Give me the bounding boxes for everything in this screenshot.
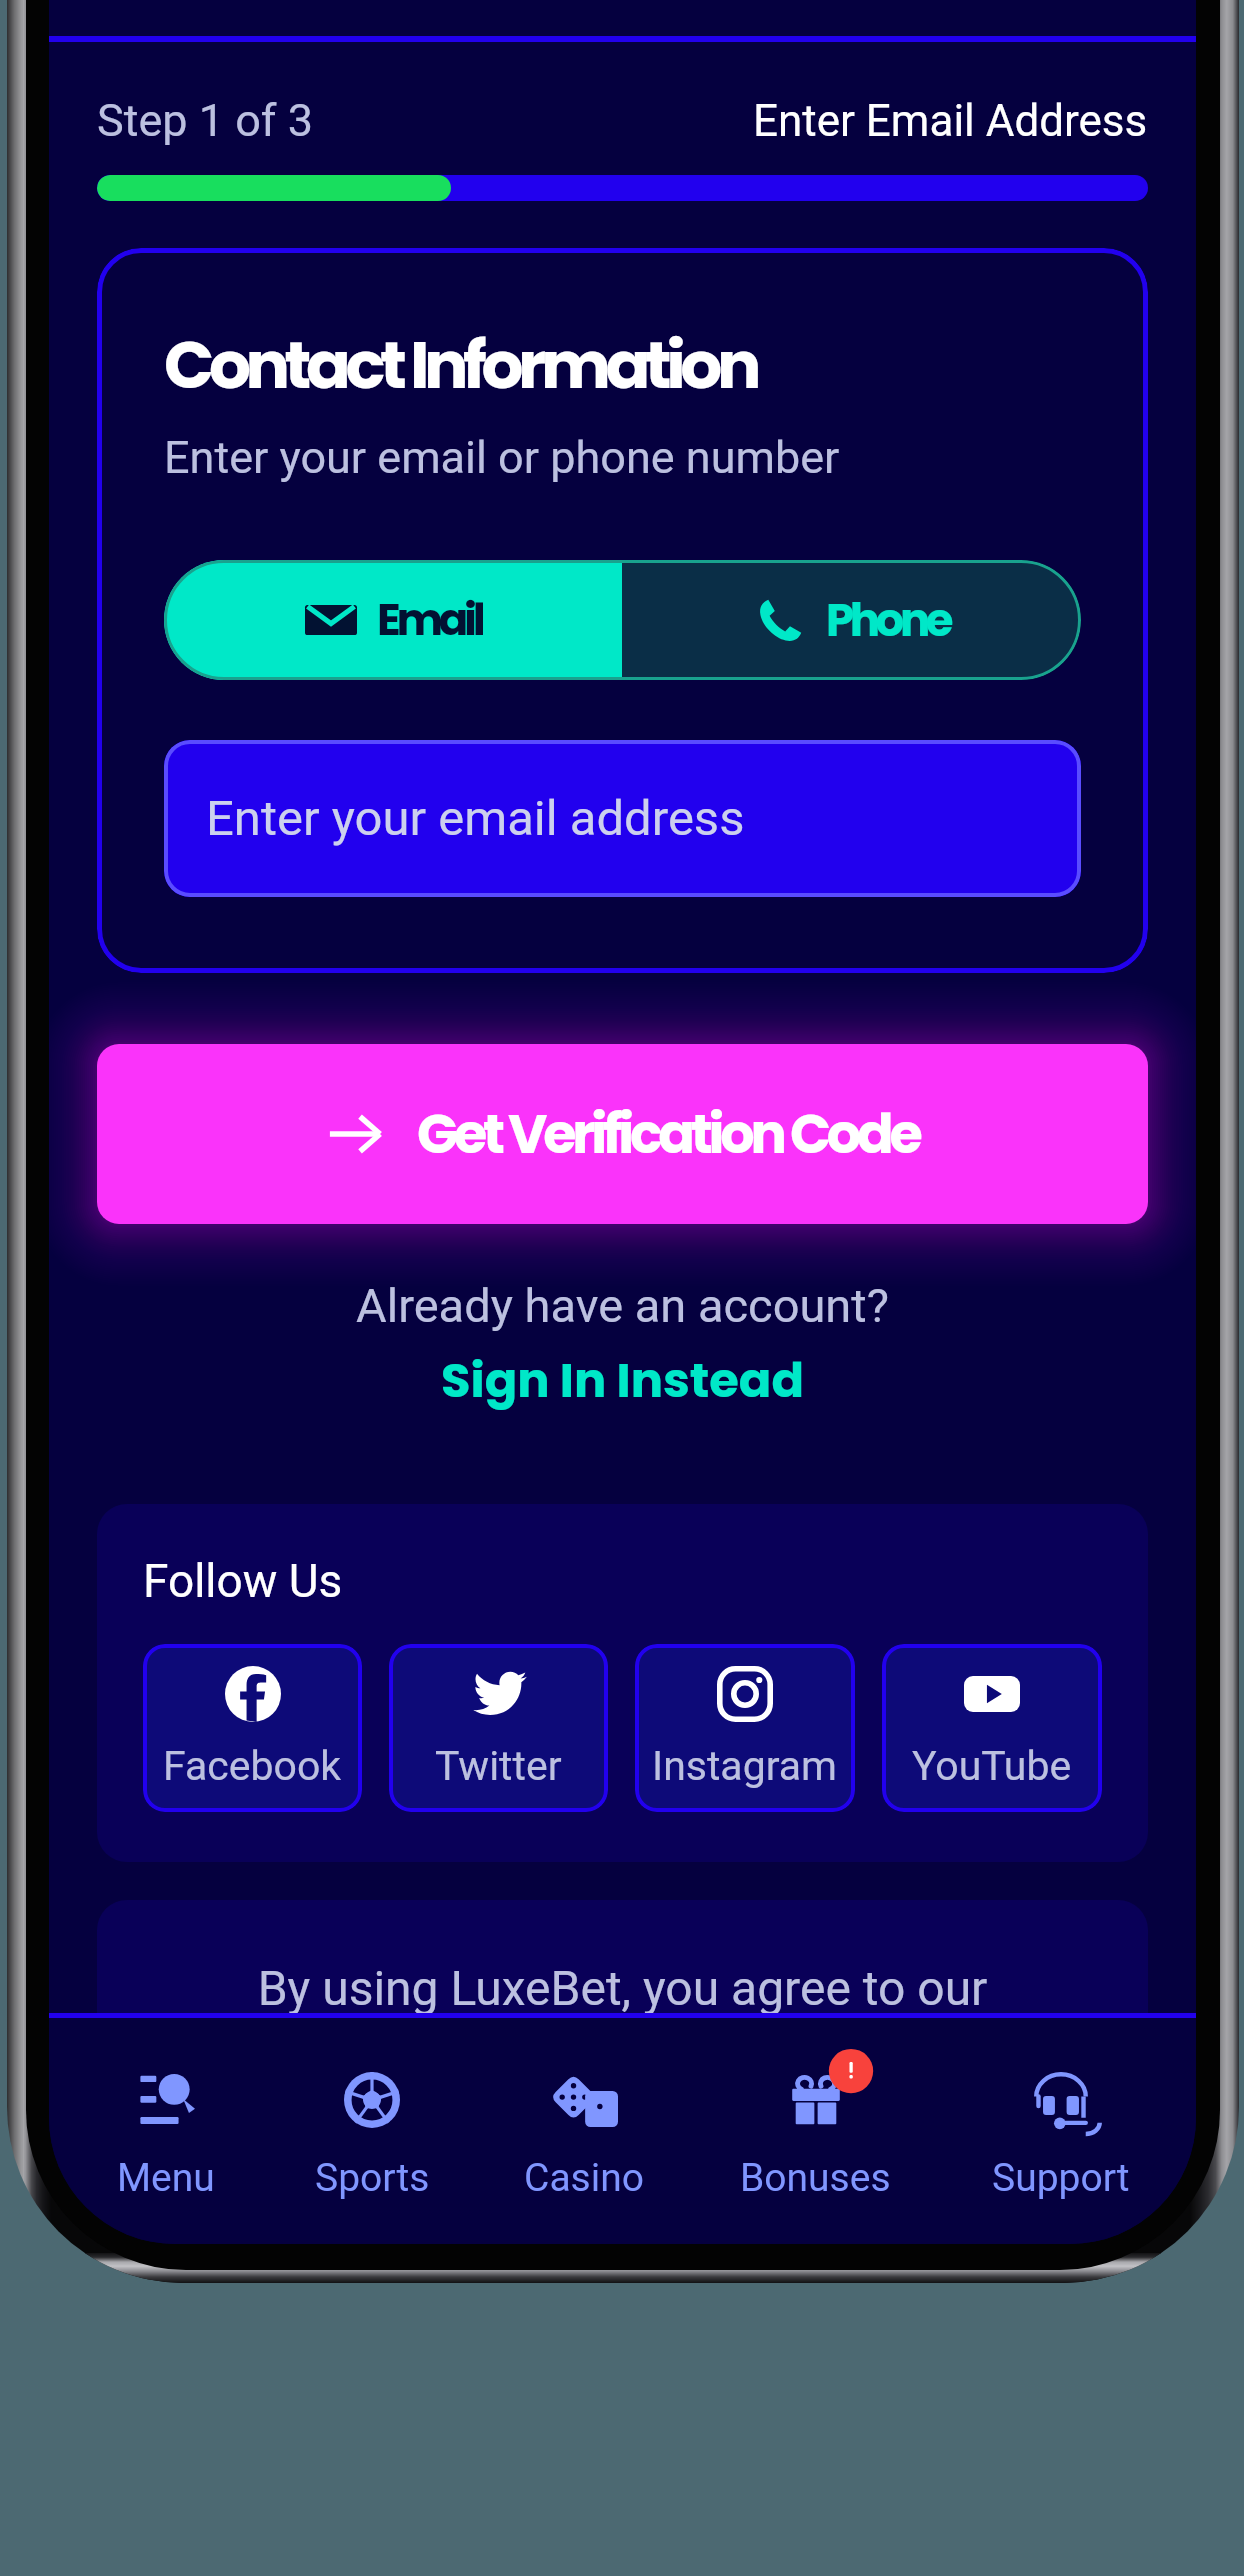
staticText: Get Verification Code: [417, 1096, 919, 1172]
staticText: Facebook: [163, 1742, 342, 1790]
button[interactable]: Facebook: [143, 1644, 362, 1812]
button[interactable]: Casino: [461, 2018, 706, 2244]
button[interactable]: Bonuses: [706, 2018, 925, 2244]
staticText: Instagram: [652, 1742, 838, 1790]
button[interactable]: Instagram: [635, 1644, 855, 1812]
staticText: Twitter: [435, 1742, 562, 1790]
staticText: Already have an account?: [49, 1278, 1196, 1333]
staticText: YouTube: [912, 1742, 1072, 1790]
button[interactable]: Email: [164, 560, 622, 680]
staticText: Casino: [524, 2155, 644, 2201]
button[interactable]: Get Verification Code: [97, 1044, 1148, 1224]
button[interactable]: Sign In Instead: [49, 1347, 1196, 1414]
staticText: Bonuses: [740, 2155, 891, 2201]
staticText: Sign In Instead: [49, 1347, 1196, 1414]
button[interactable]: Menu: [49, 2018, 283, 2244]
staticText: Enter Email Address: [753, 95, 1148, 147]
staticText: Email: [377, 589, 482, 651]
staticText: Enter your email or phone number: [164, 431, 840, 484]
button[interactable]: Support: [925, 2018, 1196, 2244]
staticText: Contact Information: [164, 319, 757, 411]
button[interactable]: Enter your email address: [164, 740, 1081, 897]
staticText: Enter your email address: [206, 790, 745, 847]
button[interactable]: Twitter: [389, 1644, 608, 1812]
staticText: Phone: [826, 589, 950, 652]
staticText: Menu: [117, 2155, 215, 2201]
button[interactable]: Phone: [622, 560, 1081, 680]
staticText: Support: [992, 2155, 1130, 2201]
button[interactable]: Sports: [283, 2018, 461, 2244]
button[interactable]: YouTube: [882, 1644, 1102, 1812]
staticText: By using LuxeBet, you agree to our: [97, 1960, 1148, 2016]
staticText: Follow Us: [143, 1554, 343, 1608]
staticText: Sports: [315, 2155, 430, 2201]
staticText: Step 1 of 3: [97, 94, 313, 147]
